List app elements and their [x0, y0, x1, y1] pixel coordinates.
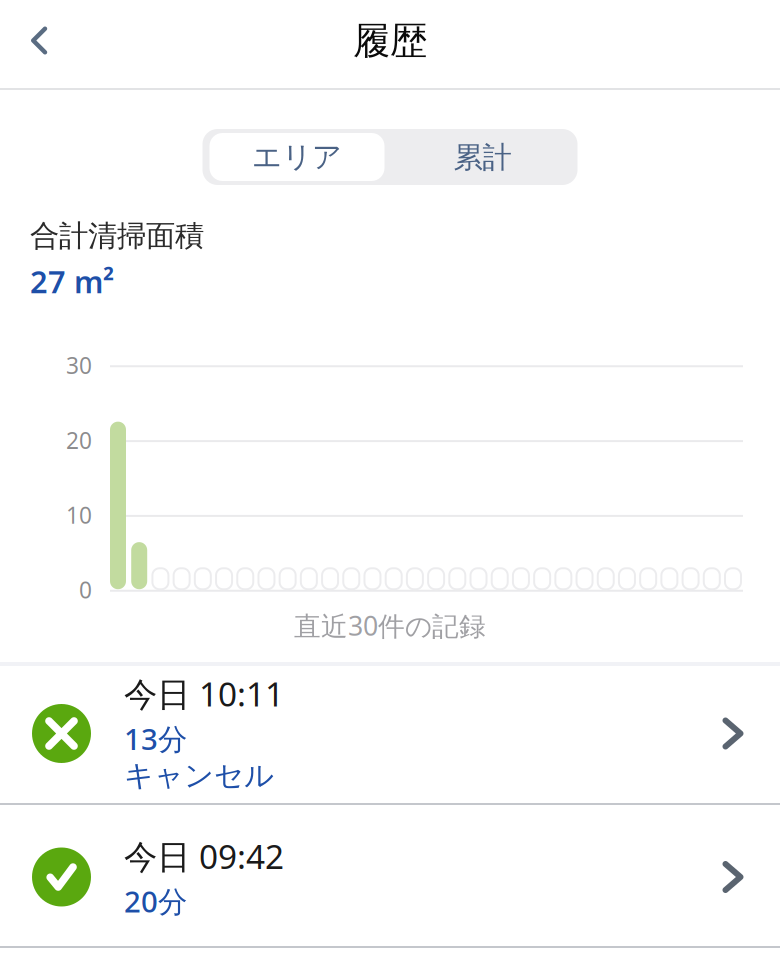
- staticText: 今日 10:11: [124, 671, 284, 716]
- staticText: 今日 09:42: [124, 834, 284, 878]
- staticText: 累計: [453, 139, 511, 175]
- staticText: 13分: [124, 719, 187, 758]
- button[interactable]: 累計: [390, 133, 575, 181]
- staticText: エリア: [252, 139, 342, 175]
- staticText: 30: [66, 350, 92, 380]
- button[interactable]: 今日 10:11: [0, 666, 780, 803]
- staticText: 27 m²: [30, 261, 114, 302]
- staticText: 合計清掃面積: [30, 218, 204, 254]
- staticText: 履歴: [353, 18, 427, 64]
- staticText: 10: [66, 500, 92, 530]
- button[interactable]: 今日 09:42: [0, 805, 780, 946]
- button[interactable]: Back: [9, 10, 69, 70]
- staticText: 20: [66, 425, 92, 455]
- staticText: キャンセル: [124, 758, 274, 794]
- button[interactable]: エリア: [209, 133, 384, 181]
- staticText: 直近30件の記録: [294, 608, 486, 643]
- staticText: 0: [79, 575, 92, 605]
- staticText: 20分: [124, 881, 187, 920]
